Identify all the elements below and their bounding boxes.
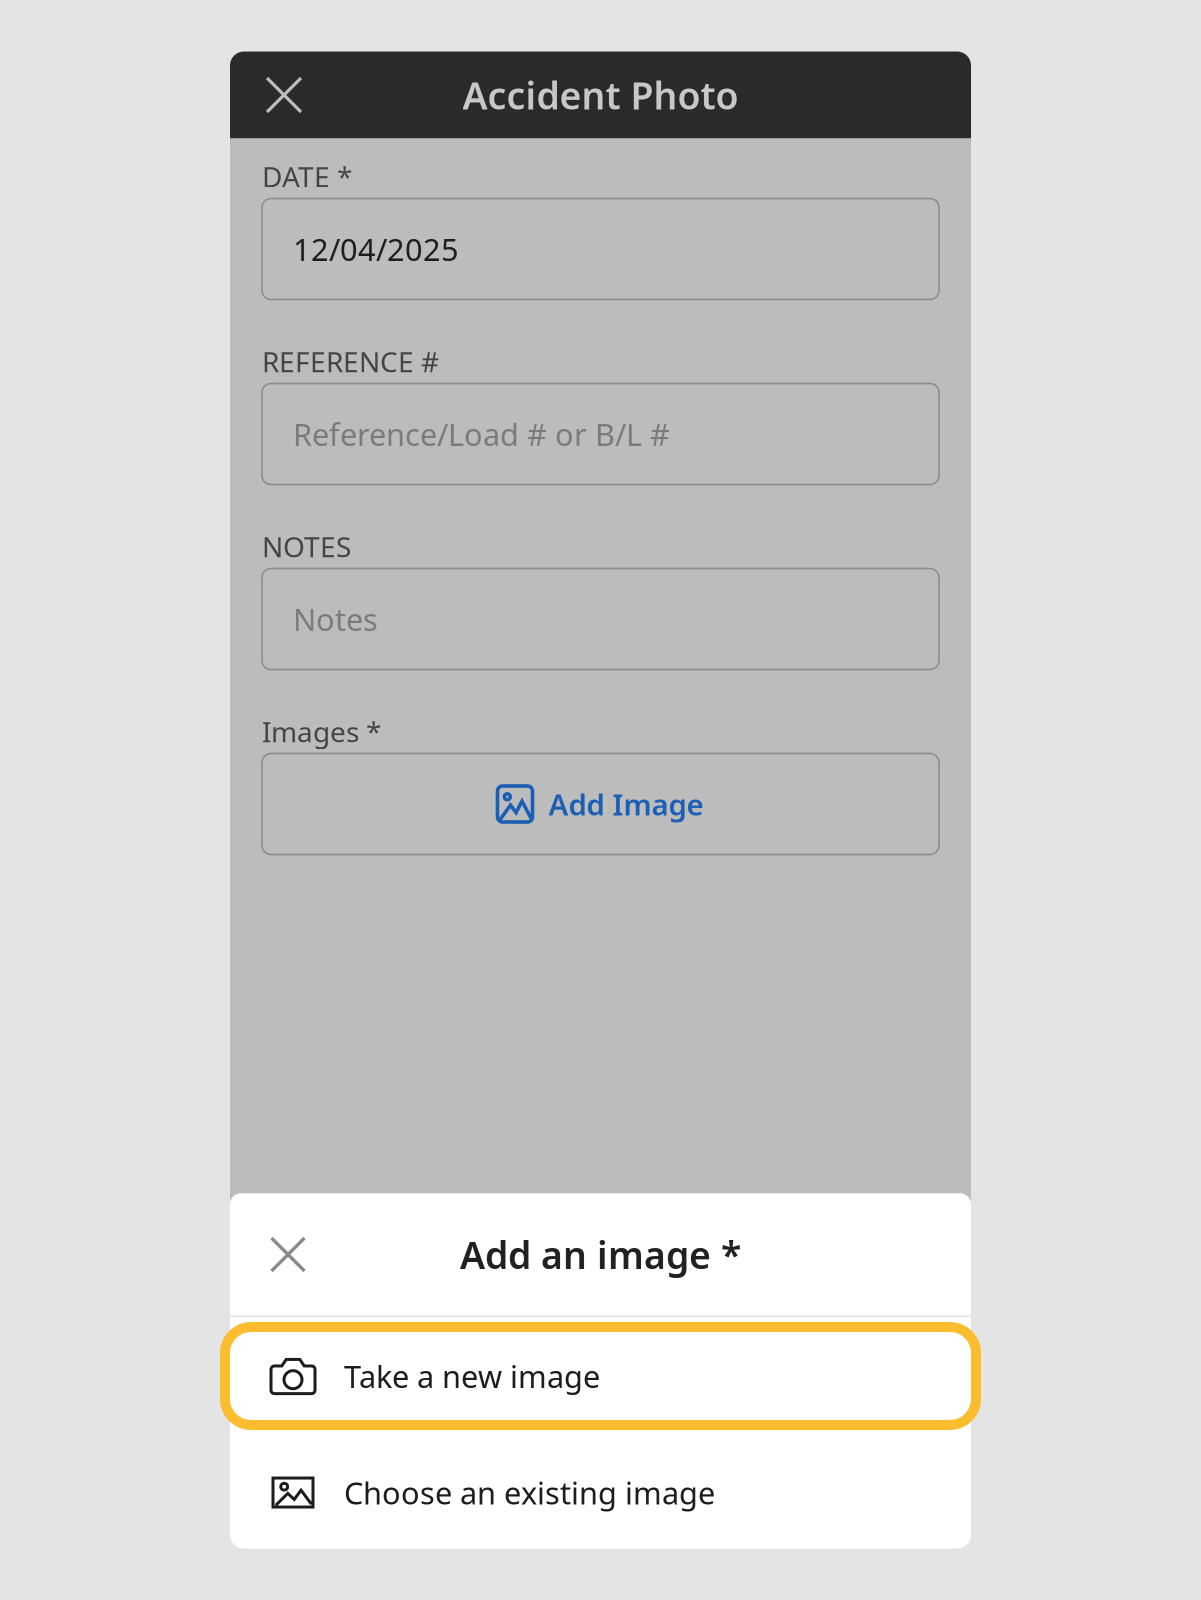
staticText: Take a new image [344,1356,600,1396]
staticText: Add an image * [460,1230,741,1279]
button[interactable]: 12/04/2025 [262,198,939,299]
staticText: REFERENCE # [262,343,439,380]
staticText: Add Image [548,784,703,823]
staticText: Images * [262,713,381,750]
button[interactable]: Choose an existing image [230,1430,971,1554]
staticText: Accident Photo [462,70,738,120]
button[interactable]: Add Image [262,753,939,854]
staticText: 12/04/2025 [293,229,459,269]
staticText: Notes [293,599,378,639]
button[interactable]: Close [230,1193,346,1315]
staticText: Choose an existing image [344,1472,715,1513]
staticText: Reference/Load # or B/L # [293,414,670,454]
staticText: DATE * [262,158,352,195]
staticText: NOTES [262,528,351,565]
button[interactable]: Notes [262,568,939,669]
button[interactable]: Take a new image [230,1321,971,1430]
button[interactable]: Close [230,51,338,138]
button[interactable]: Reference/Load # or B/L # [262,383,939,484]
